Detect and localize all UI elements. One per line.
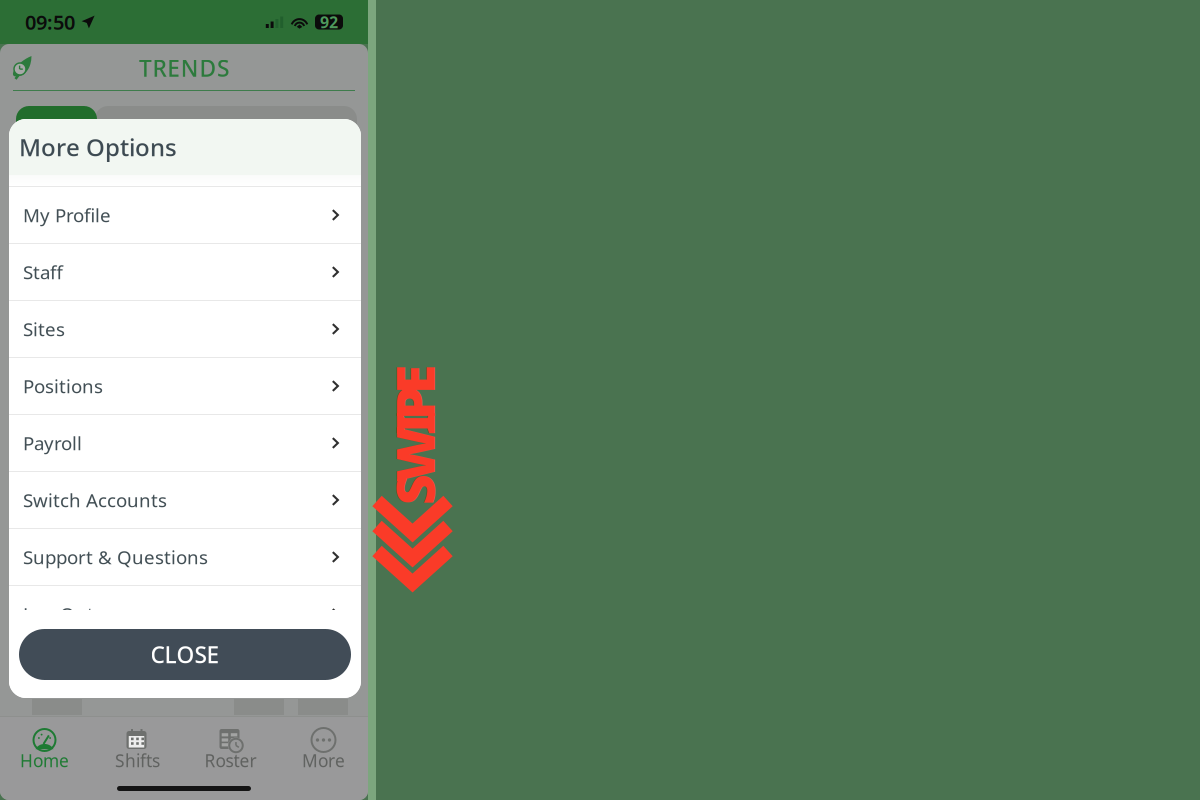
staticText: Roster — [204, 749, 256, 772]
staticText: Log Out — [23, 602, 94, 626]
button[interactable]: Home — [0, 717, 91, 775]
staticText: Payroll — [23, 431, 82, 455]
button[interactable]: Shifts — [91, 717, 184, 775]
staticText: Positions — [23, 374, 103, 398]
staticText: Sites — [23, 317, 65, 341]
button[interactable]: Switch Accounts — [9, 472, 361, 529]
staticText: CLOSE — [150, 639, 219, 669]
staticText: TRENDS — [139, 53, 229, 83]
staticText: Shifts — [115, 749, 160, 772]
button[interactable]: Payroll — [9, 415, 361, 472]
button[interactable]: My Profile — [9, 187, 361, 244]
staticText: SWIPE — [344, 400, 484, 470]
button[interactable]: More — [277, 717, 370, 775]
button[interactable]: Support & Questions — [9, 529, 361, 586]
staticText: Staff — [23, 260, 63, 284]
staticText: Support & Questions — [23, 545, 208, 569]
button[interactable]: Sites — [9, 301, 361, 358]
staticText: More Options — [19, 131, 177, 163]
button[interactable]: Positions — [9, 358, 361, 415]
button[interactable]: Roster — [184, 717, 277, 775]
staticText: 92 — [320, 11, 338, 33]
staticText: My Profile — [23, 203, 111, 227]
button[interactable]: CLOSE — [19, 629, 351, 680]
staticText: 09:50 — [25, 9, 75, 35]
staticText: More — [302, 749, 345, 772]
button[interactable]: Staff — [9, 244, 361, 301]
staticText: Home — [20, 749, 69, 772]
staticText: Switch Accounts — [23, 488, 167, 512]
